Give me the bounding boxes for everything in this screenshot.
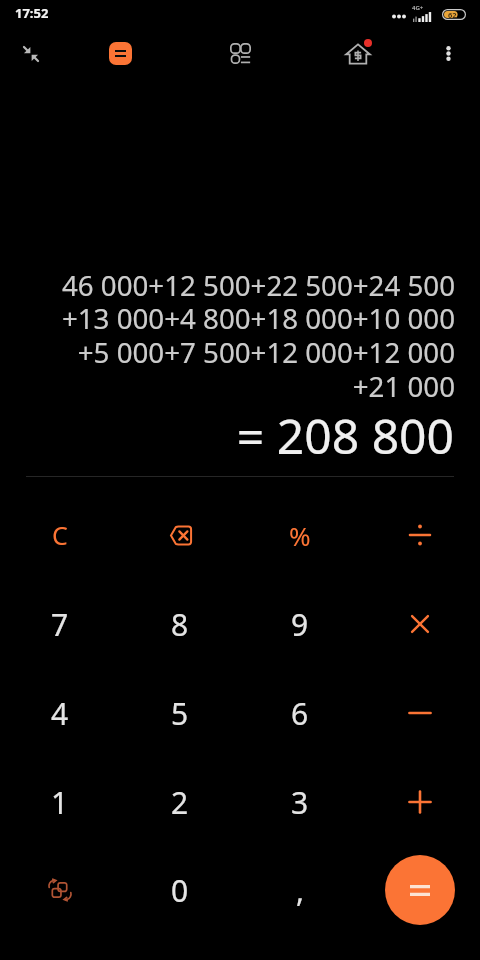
button[interactable]: Multiply — [365, 581, 475, 667]
staticText: 5 — [171, 693, 189, 734]
button[interactable]: Minus — [365, 670, 475, 756]
button[interactable]: 2 — [125, 759, 235, 845]
button[interactable]: Plus — [365, 759, 475, 845]
staticText: 7 — [51, 604, 69, 645]
staticText: 4G+ — [412, 4, 424, 12]
staticText: 17:52 — [15, 4, 49, 22]
button[interactable]: Converter — [219, 32, 261, 74]
button[interactable]: 3 — [245, 759, 355, 845]
button[interactable]: % — [245, 492, 355, 578]
staticText: 9 — [291, 604, 309, 645]
button[interactable]: 4 — [5, 670, 115, 756]
button[interactable]: Calculator — [109, 42, 132, 65]
button[interactable]: Divide — [365, 492, 475, 578]
staticText: , — [296, 870, 305, 911]
staticText: 62 — [448, 10, 457, 20]
button[interactable]: Equals — [385, 855, 455, 925]
staticText: 3 — [291, 782, 309, 823]
button[interactable]: 8 — [125, 581, 235, 667]
button[interactable]: Collapse — [9, 32, 53, 76]
button[interactable]: Backspace — [125, 492, 235, 578]
staticText: 1 — [51, 782, 69, 823]
staticText: 4 — [51, 693, 69, 734]
button[interactable]: Mortgage — [336, 32, 380, 76]
button[interactable]: Convert units — [5, 847, 115, 933]
button[interactable]: 0 — [125, 847, 235, 933]
button[interactable]: 6 — [245, 670, 355, 756]
button[interactable]: 7 — [5, 581, 115, 667]
staticText: 8 — [171, 604, 189, 645]
staticText: 2 — [171, 782, 189, 823]
button[interactable]: More options — [427, 32, 469, 74]
button[interactable]: , — [245, 847, 355, 933]
button[interactable]: 1 — [5, 759, 115, 845]
staticText: 6 — [291, 693, 309, 734]
staticText: = 208 800 — [0, 403, 454, 468]
button[interactable]: C — [5, 492, 115, 578]
button[interactable]: 5 — [125, 670, 235, 756]
staticText: 0 — [171, 870, 189, 911]
button[interactable]: 9 — [245, 581, 355, 667]
staticText: C — [52, 518, 68, 552]
staticText: % — [289, 518, 311, 553]
staticText: 46 000+12 500+22 500+24 500 +13 000+4 80… — [0, 266, 455, 405]
